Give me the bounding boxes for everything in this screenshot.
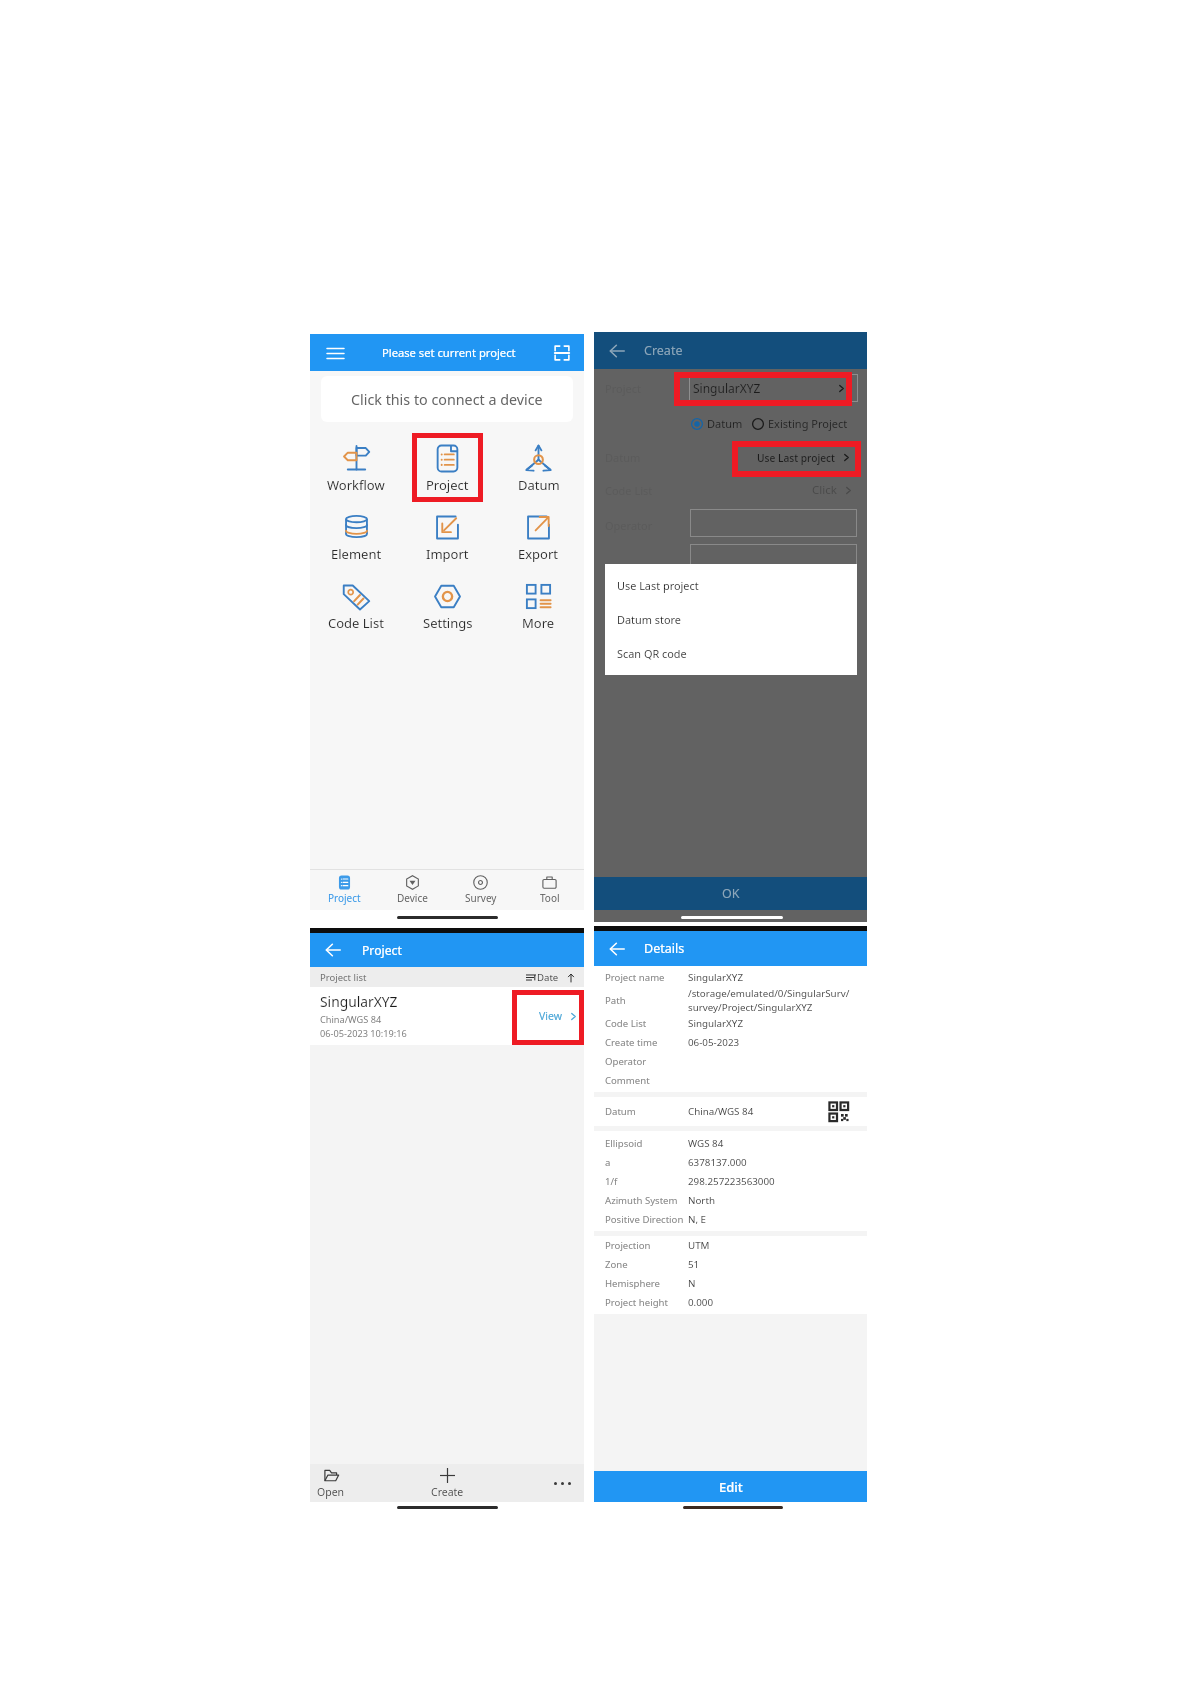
button[interactable]: OK [594,877,867,910]
staticText: Use Last project [757,451,835,465]
staticText: SingularXYZ [320,992,398,1011]
staticText: a [605,1156,688,1169]
button[interactable]: Datum store [605,602,857,636]
staticText: Import [426,545,469,563]
staticText: China/WGS 84 [320,1013,382,1026]
button[interactable]: Settings [402,582,493,651]
staticText: Projection [605,1239,688,1252]
button[interactable]: Scan QR code [605,636,857,670]
button[interactable]: Survey [446,870,515,910]
staticText: Project [426,476,469,494]
staticText: SingularXYZ [693,380,761,396]
staticText: Comment [605,1074,688,1087]
button[interactable]: SingularXYZ [310,987,584,1045]
button[interactable]: Edit [594,1471,867,1502]
staticText: 06-05-2023 10:19:16 [320,1027,407,1040]
staticText: Tool [540,891,560,905]
staticText: Project [362,942,402,959]
staticText: 51 [688,1258,700,1271]
staticText: Create time [605,1036,688,1049]
staticText: SingularXYZ [688,1017,743,1030]
button[interactable]: Date [526,971,576,984]
staticText: More [522,614,555,632]
staticText: Datum [707,416,743,431]
staticText: Edit [719,1478,743,1496]
button[interactable]: Project [310,870,378,910]
staticText: Zone [605,1258,688,1271]
button[interactable]: Element [310,513,402,582]
staticText: Settings [423,614,473,632]
staticText: Workflow [327,476,385,494]
button[interactable]: Create [402,1464,492,1502]
staticText: Click this to connect a device [351,390,543,409]
staticText: Operator [605,1055,688,1068]
staticText: Create [431,1485,464,1499]
staticText: N [688,1277,696,1290]
staticText: Code List [328,614,384,632]
staticText: Project list [320,971,367,984]
staticText: 0.000 [688,1296,714,1309]
staticText: Ellipsoid [605,1137,688,1150]
staticText: Use Last project [617,578,699,593]
staticText: 1/f [605,1175,688,1188]
button[interactable]: Back [600,932,634,966]
staticText: N, E [688,1213,707,1226]
button[interactable]: Open [289,1464,373,1502]
staticText: Export [518,545,559,563]
staticText: Open [317,1485,345,1499]
staticText: Datum [518,476,560,494]
button[interactable]: Use Last project [605,568,857,602]
staticText: Code List [605,1017,688,1030]
button[interactable]: Datum [493,444,584,513]
staticText: Element [331,545,382,563]
staticText: WGS 84 [688,1137,724,1150]
staticText: Hemisphere [605,1277,688,1290]
staticText: Project height [605,1296,688,1309]
button[interactable]: Use Last project [757,447,852,468]
staticText: Datum store [617,612,681,627]
button[interactable]: Import [402,513,493,582]
staticText: Datum [605,1105,688,1118]
button[interactable]: Menu [318,336,352,370]
button[interactable]: SingularXYZ [689,374,858,402]
staticText: China/WGS 84 [688,1105,754,1118]
button[interactable]: Workflow [310,444,402,513]
button[interactable]: Existing Project [752,416,848,431]
staticText: 298.257223563000 [688,1175,775,1188]
button[interactable]: Scan QR code [545,336,579,370]
button[interactable]: Code List [310,582,402,651]
button[interactable]: Back [316,933,350,967]
staticText: Survey [465,891,497,905]
button[interactable]: Project [402,444,493,513]
staticText: Create [644,342,683,359]
button[interactable]: Click this to connect a device [321,376,573,422]
staticText: SingularXYZ [688,971,743,984]
staticText: OK [722,885,740,902]
button[interactable]: More [493,582,584,651]
staticText: 6378137.000 [688,1156,747,1169]
staticText: Click [812,482,837,498]
button[interactable]: More options [540,1464,584,1502]
staticText: /storage/emulated/0/SingularSurv/ [688,987,850,1000]
staticText: Device [397,891,428,905]
staticText: survey/Project/SingularXYZ [688,1001,813,1014]
button[interactable]: Export [493,513,584,582]
staticText: Path [605,994,688,1007]
staticText: Positive Direction [605,1213,688,1226]
staticText: Azimuth System [605,1194,688,1207]
staticText: North [688,1194,716,1207]
staticText: 06-05-2023 [688,1036,740,1049]
button[interactable]: Back [600,334,634,368]
button[interactable]: Tool [515,870,584,910]
staticText: Date [537,971,559,984]
staticText: Project name [605,971,688,984]
staticText: UTM [688,1239,710,1252]
button[interactable]: Device [378,870,446,910]
button[interactable]: Datum [691,416,743,431]
button[interactable]: Show QR code [829,1102,849,1122]
